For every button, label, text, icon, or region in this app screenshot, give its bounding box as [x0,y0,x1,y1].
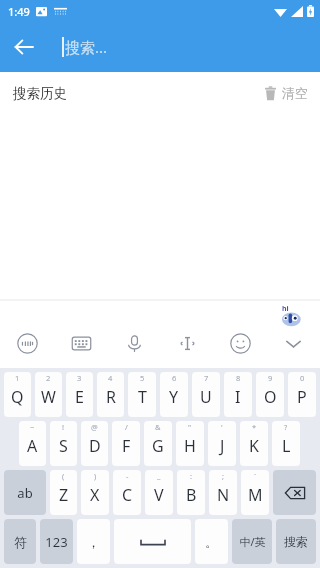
button[interactable]: 4 [97,372,124,417]
staticText: X [90,484,100,506]
button[interactable]: ， [77,519,110,564]
button[interactable]: 2 [35,372,62,417]
button[interactable]: Back [0,23,48,71]
button[interactable]: ) [81,470,109,515]
staticText: ! [62,422,65,432]
staticText: 清空 [282,85,308,101]
staticText: 9 [268,373,273,383]
button[interactable]: " [176,421,204,466]
button[interactable]: 符 [4,519,36,564]
button[interactable]: Keyboard layout [54,326,108,360]
button[interactable]: ; [209,470,237,515]
button[interactable]: 5 [128,372,156,417]
staticText: V [154,484,164,506]
button[interactable]: 搜索 [276,519,316,564]
button[interactable]: 0 [288,372,316,417]
staticText: M [248,484,263,506]
staticText: 1 [15,373,20,383]
staticText: E [75,386,84,408]
staticText: 5 [140,373,145,383]
staticText: 搜索... [65,37,108,57]
staticText: ) [94,471,97,481]
staticText: Z [59,484,69,506]
button[interactable]: Input method [0,326,54,360]
button[interactable]: 8 [224,372,252,417]
staticText: H [184,435,196,457]
button[interactable]: Voice input [108,326,161,360]
button[interactable]: ! [50,421,77,466]
button[interactable]: 。 [195,519,228,564]
staticText: & [155,422,161,432]
button[interactable]: 中/英 [232,519,272,564]
staticText: 1:49 [8,4,30,19]
staticText: 8 [236,373,241,383]
staticText: ; [222,471,225,481]
staticText: hi [282,304,289,314]
staticText: 3 [77,373,82,383]
button[interactable]: ' [208,421,236,466]
staticText: ， [87,534,100,550]
staticText: 7 [204,373,209,383]
staticText: 中/英 [239,534,266,549]
staticText: 4 [108,373,113,383]
staticText: " [188,422,192,432]
staticText: : [190,471,193,481]
button[interactable]: 123 [40,519,73,564]
button[interactable]: : [177,470,205,515]
button[interactable]: Space [114,519,191,564]
staticText: ? [284,422,288,432]
staticText: 。 [205,534,218,550]
staticText: O [264,386,277,408]
button[interactable]: * [240,421,268,466]
staticText: D [89,435,101,457]
button[interactable]: 搜索... [48,22,320,72]
button[interactable]: Move cursor [161,326,214,360]
staticText: ~ [30,422,35,432]
staticText: 搜索 [284,534,308,549]
staticText: W [41,386,56,408]
button[interactable]: Backspace [273,470,316,515]
button[interactable]: - [113,470,141,515]
staticText: A [27,435,38,457]
staticText: J [220,435,225,457]
staticText: N [217,484,230,506]
button[interactable]: ( [50,470,77,515]
button[interactable]: / [112,421,140,466]
button[interactable]: _ [145,470,173,515]
staticText: * [252,422,257,432]
button[interactable]: Emoji [214,326,267,360]
staticText: ab [17,484,33,502]
staticText: 6 [172,373,177,383]
staticText: 0 [300,373,305,383]
button[interactable]: 清空 [262,81,310,105]
staticText: / [125,422,128,432]
staticText: T [138,386,147,408]
button[interactable]: 3 [66,372,93,417]
staticText: - [126,471,129,481]
staticText: S [59,435,68,457]
button[interactable]: ~ [19,421,46,466]
staticText: Y [169,386,179,408]
button[interactable]: 6 [160,372,188,417]
staticText: F [122,435,131,457]
staticText: _ [157,471,161,481]
button[interactable]: 7 [192,372,220,417]
button[interactable]: ? [272,421,300,466]
button[interactable]: 1 [4,372,31,417]
staticText: L [282,435,291,457]
staticText: ( [62,471,65,481]
button[interactable]: ` [241,470,269,515]
staticText: 123 [45,533,68,551]
button[interactable]: Hide keyboard [267,326,320,360]
button[interactable]: & [144,421,172,466]
staticText: Q [11,386,24,408]
staticText: C [122,484,133,506]
button[interactable]: ab [4,470,46,515]
button[interactable]: @ [81,421,108,466]
staticText: U [200,386,212,408]
button[interactable]: 9 [256,372,284,417]
staticText: B [186,484,197,506]
staticText: I [235,386,241,408]
staticText: 搜索历史 [13,85,67,102]
staticText: G [152,435,164,457]
